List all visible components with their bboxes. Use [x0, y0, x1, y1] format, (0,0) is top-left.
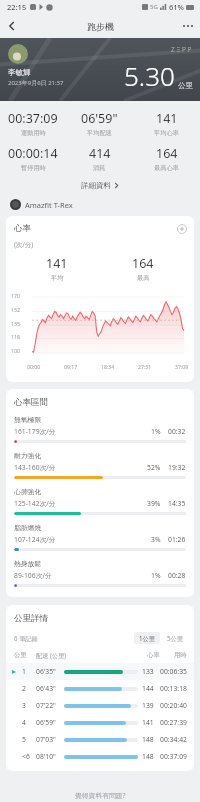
staticText: 配速 (公里): [36, 651, 67, 659]
button[interactable]: 1公里: [134, 632, 160, 644]
staticText: 無氧極限: [14, 415, 42, 424]
button[interactable]: 5公里: [163, 632, 187, 644]
staticText: 暫停用時: [21, 164, 46, 172]
staticText: 消耗: [93, 164, 106, 172]
staticText: 164: [132, 255, 154, 272]
staticText: 135: [11, 320, 20, 327]
staticText: 運動用時: [21, 129, 46, 137]
staticText: 107-124次/分: [14, 535, 56, 544]
staticText: 平均配速: [87, 129, 112, 137]
button[interactable]: 無氧極限: [6, 415, 194, 451]
staticText: 152: [11, 306, 20, 313]
staticText: 22:15: [7, 2, 27, 12]
staticText: 1公里: [139, 634, 155, 642]
staticText: 5: [22, 735, 36, 744]
staticText: 心率: [14, 223, 31, 234]
button[interactable]: 脂肪燃燒: [6, 523, 194, 559]
staticText: 09:17: [64, 363, 78, 370]
staticText: 133: [142, 667, 160, 676]
staticText: 00:13:18: [160, 684, 187, 693]
button[interactable]: 熱身放鬆: [6, 559, 194, 595]
staticText: 52%: [147, 463, 161, 472]
staticText: <6: [22, 752, 36, 761]
staticText: 心率區間: [14, 397, 48, 408]
staticText: 00:06:35: [160, 667, 187, 676]
staticText: 141: [46, 255, 68, 272]
staticText: 07'22": [36, 701, 64, 710]
button[interactable]: Back: [0, 14, 24, 38]
staticText: 19:32: [168, 463, 186, 472]
staticText: 08'10": [36, 752, 64, 761]
staticText: 00:28: [168, 571, 186, 580]
staticText: 143-160次/分: [14, 463, 56, 472]
button[interactable]: 3: [6, 697, 194, 714]
button[interactable]: <6: [6, 748, 194, 765]
staticText: 161-179次/分: [14, 427, 56, 436]
staticText: 164: [156, 145, 178, 162]
staticText: 4: [22, 718, 36, 727]
staticText: 39%: [147, 499, 161, 508]
staticText: Z Ξ P P: [171, 45, 192, 54]
staticText: 李敏輝: [8, 68, 31, 77]
staticText: 平均心率: [154, 129, 179, 137]
staticText: 148: [142, 752, 160, 761]
staticText: 跑步機: [87, 21, 114, 32]
button[interactable]: 詳細資料: [0, 181, 200, 190]
staticText: 熱身放鬆: [14, 559, 42, 568]
staticText: 3%: [151, 535, 161, 544]
staticText: 覺得資料有問題?: [75, 791, 126, 800]
staticText: 125-142次/分: [14, 499, 56, 508]
staticText: 148: [142, 735, 160, 744]
button[interactable]: 1: [6, 663, 194, 680]
button[interactable]: 2: [6, 680, 194, 697]
staticText: 1%: [151, 427, 161, 436]
staticText: Amazfit T-Rex: [25, 200, 73, 210]
staticText: 心率: [147, 651, 160, 659]
staticText: 06'59": [81, 110, 118, 127]
staticText: 00:34:42: [160, 735, 187, 744]
staticText: 3: [22, 701, 36, 710]
staticText: 最高心率: [154, 164, 179, 172]
staticText: 100: [11, 347, 20, 354]
button[interactable]: 5: [6, 731, 194, 748]
staticText: 06'43": [36, 684, 64, 693]
button[interactable]: 4: [6, 714, 194, 731]
staticText: 公里: [178, 81, 193, 90]
staticText: 00:32: [168, 427, 186, 436]
staticText: 170: [11, 292, 20, 299]
staticText: 00:37:09: [8, 110, 58, 127]
staticText: 5G: [150, 3, 158, 11]
staticText: 139: [142, 701, 160, 710]
staticText: 耐力強化: [14, 451, 42, 460]
staticText: 1: [22, 667, 36, 676]
button[interactable]: Heart rate info: [177, 224, 187, 234]
staticText: 414: [89, 145, 111, 162]
staticText: 詳細資料: [81, 181, 111, 190]
staticText: 平均: [51, 274, 64, 282]
staticText: 公里: [14, 651, 36, 659]
staticText: 07'03": [36, 735, 64, 744]
staticText: 01:26: [168, 535, 186, 544]
staticText: 脂肪燃燒: [14, 523, 42, 532]
staticText: 37:09: [175, 363, 189, 370]
staticText: 141: [142, 718, 160, 727]
button[interactable]: 耐力強化: [6, 451, 194, 487]
staticText: 心肺強化: [14, 487, 42, 496]
staticText: 27:51: [138, 363, 152, 370]
staticText: 00:27:39: [160, 718, 187, 727]
staticText: 18:34: [101, 363, 115, 370]
staticText: 1%: [151, 571, 161, 580]
button[interactable]: Amazfit T-Rex: [0, 199, 200, 216]
staticText: 用時: [174, 651, 187, 659]
button[interactable]: 心肺強化: [6, 487, 194, 523]
staticText: 2: [22, 684, 36, 693]
staticText: 14:35: [168, 499, 186, 508]
staticText: 61%: [169, 2, 184, 12]
staticText: 最高: [137, 274, 150, 282]
staticText: (次/分): [14, 240, 34, 249]
staticText: 00:00: [27, 363, 41, 370]
staticText: 2023年9月6日 21:37: [8, 79, 64, 87]
staticText: 06'59": [36, 718, 64, 727]
button[interactable]: More options: [176, 14, 200, 38]
staticText: 06'35": [36, 667, 64, 676]
